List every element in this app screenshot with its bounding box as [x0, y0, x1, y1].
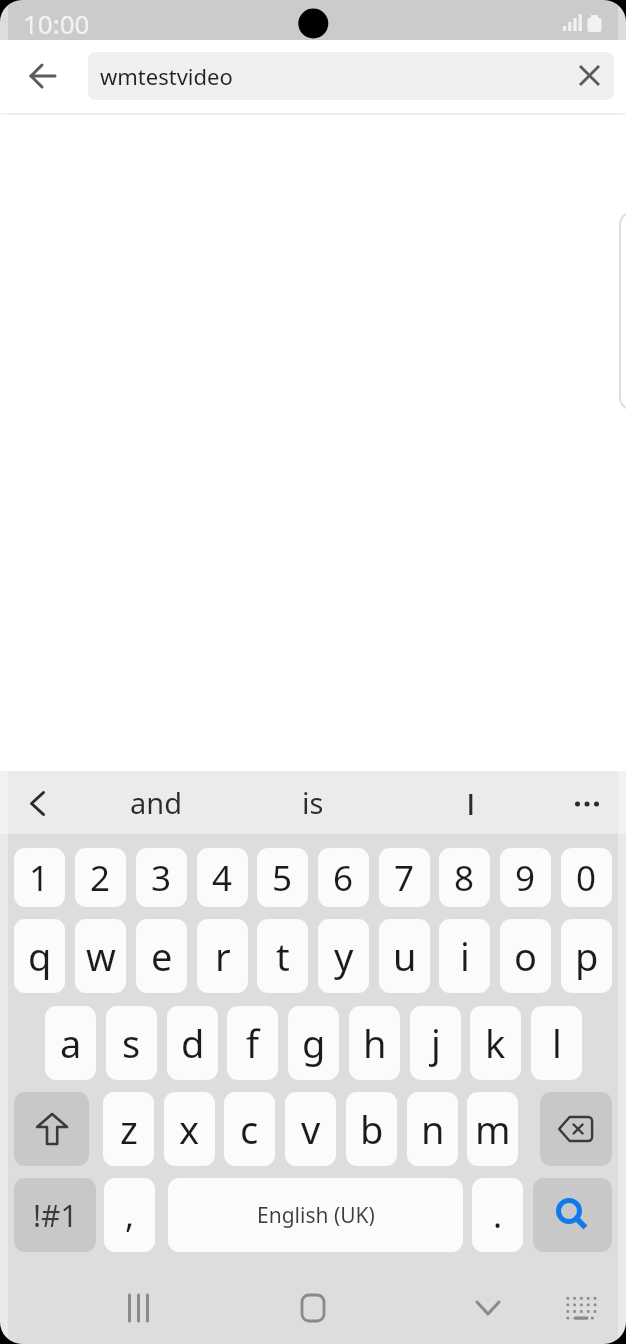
staticText: 4: [212, 854, 233, 902]
staticText: x: [179, 1103, 200, 1155]
staticText: 1: [29, 854, 50, 902]
staticText: a: [60, 1017, 82, 1069]
staticText: 2: [90, 854, 111, 902]
staticText: 0: [576, 854, 597, 902]
staticText: and: [130, 783, 183, 822]
staticText: d: [181, 1017, 205, 1069]
staticText: o: [514, 930, 537, 982]
staticText: q: [28, 930, 52, 982]
staticText: 8: [454, 854, 475, 902]
staticText: t: [276, 930, 290, 982]
staticText: j: [431, 1017, 441, 1069]
staticText: b: [360, 1103, 384, 1155]
staticText: !#1: [33, 1195, 78, 1236]
staticText: h: [363, 1017, 387, 1069]
staticText: s: [122, 1017, 141, 1069]
staticText: wmtestvideo: [100, 61, 233, 91]
staticText: 6: [333, 854, 354, 902]
staticText: e: [151, 930, 173, 982]
staticText: l: [552, 1017, 562, 1069]
staticText: k: [485, 1017, 506, 1069]
staticText: v: [301, 1103, 321, 1155]
staticText: i: [460, 930, 470, 982]
staticText: f: [246, 1017, 260, 1069]
staticText: g: [302, 1017, 326, 1069]
staticText: u: [393, 930, 417, 982]
staticText: 7: [394, 854, 415, 902]
staticText: 10:00: [23, 6, 90, 41]
staticText: ,: [125, 1192, 135, 1238]
staticText: y: [334, 930, 354, 982]
staticText: 9: [515, 854, 536, 902]
staticText: 3: [151, 854, 172, 902]
staticText: English (UK): [257, 1201, 375, 1230]
staticText: m: [475, 1103, 511, 1155]
staticText: is: [302, 783, 324, 822]
staticText: w: [86, 930, 116, 982]
staticText: n: [421, 1103, 445, 1155]
staticText: r: [215, 930, 231, 982]
staticText: .: [493, 1192, 503, 1238]
staticText: 5: [272, 854, 293, 902]
staticText: c: [240, 1103, 259, 1155]
staticText: z: [120, 1103, 138, 1155]
staticText: p: [575, 930, 599, 982]
